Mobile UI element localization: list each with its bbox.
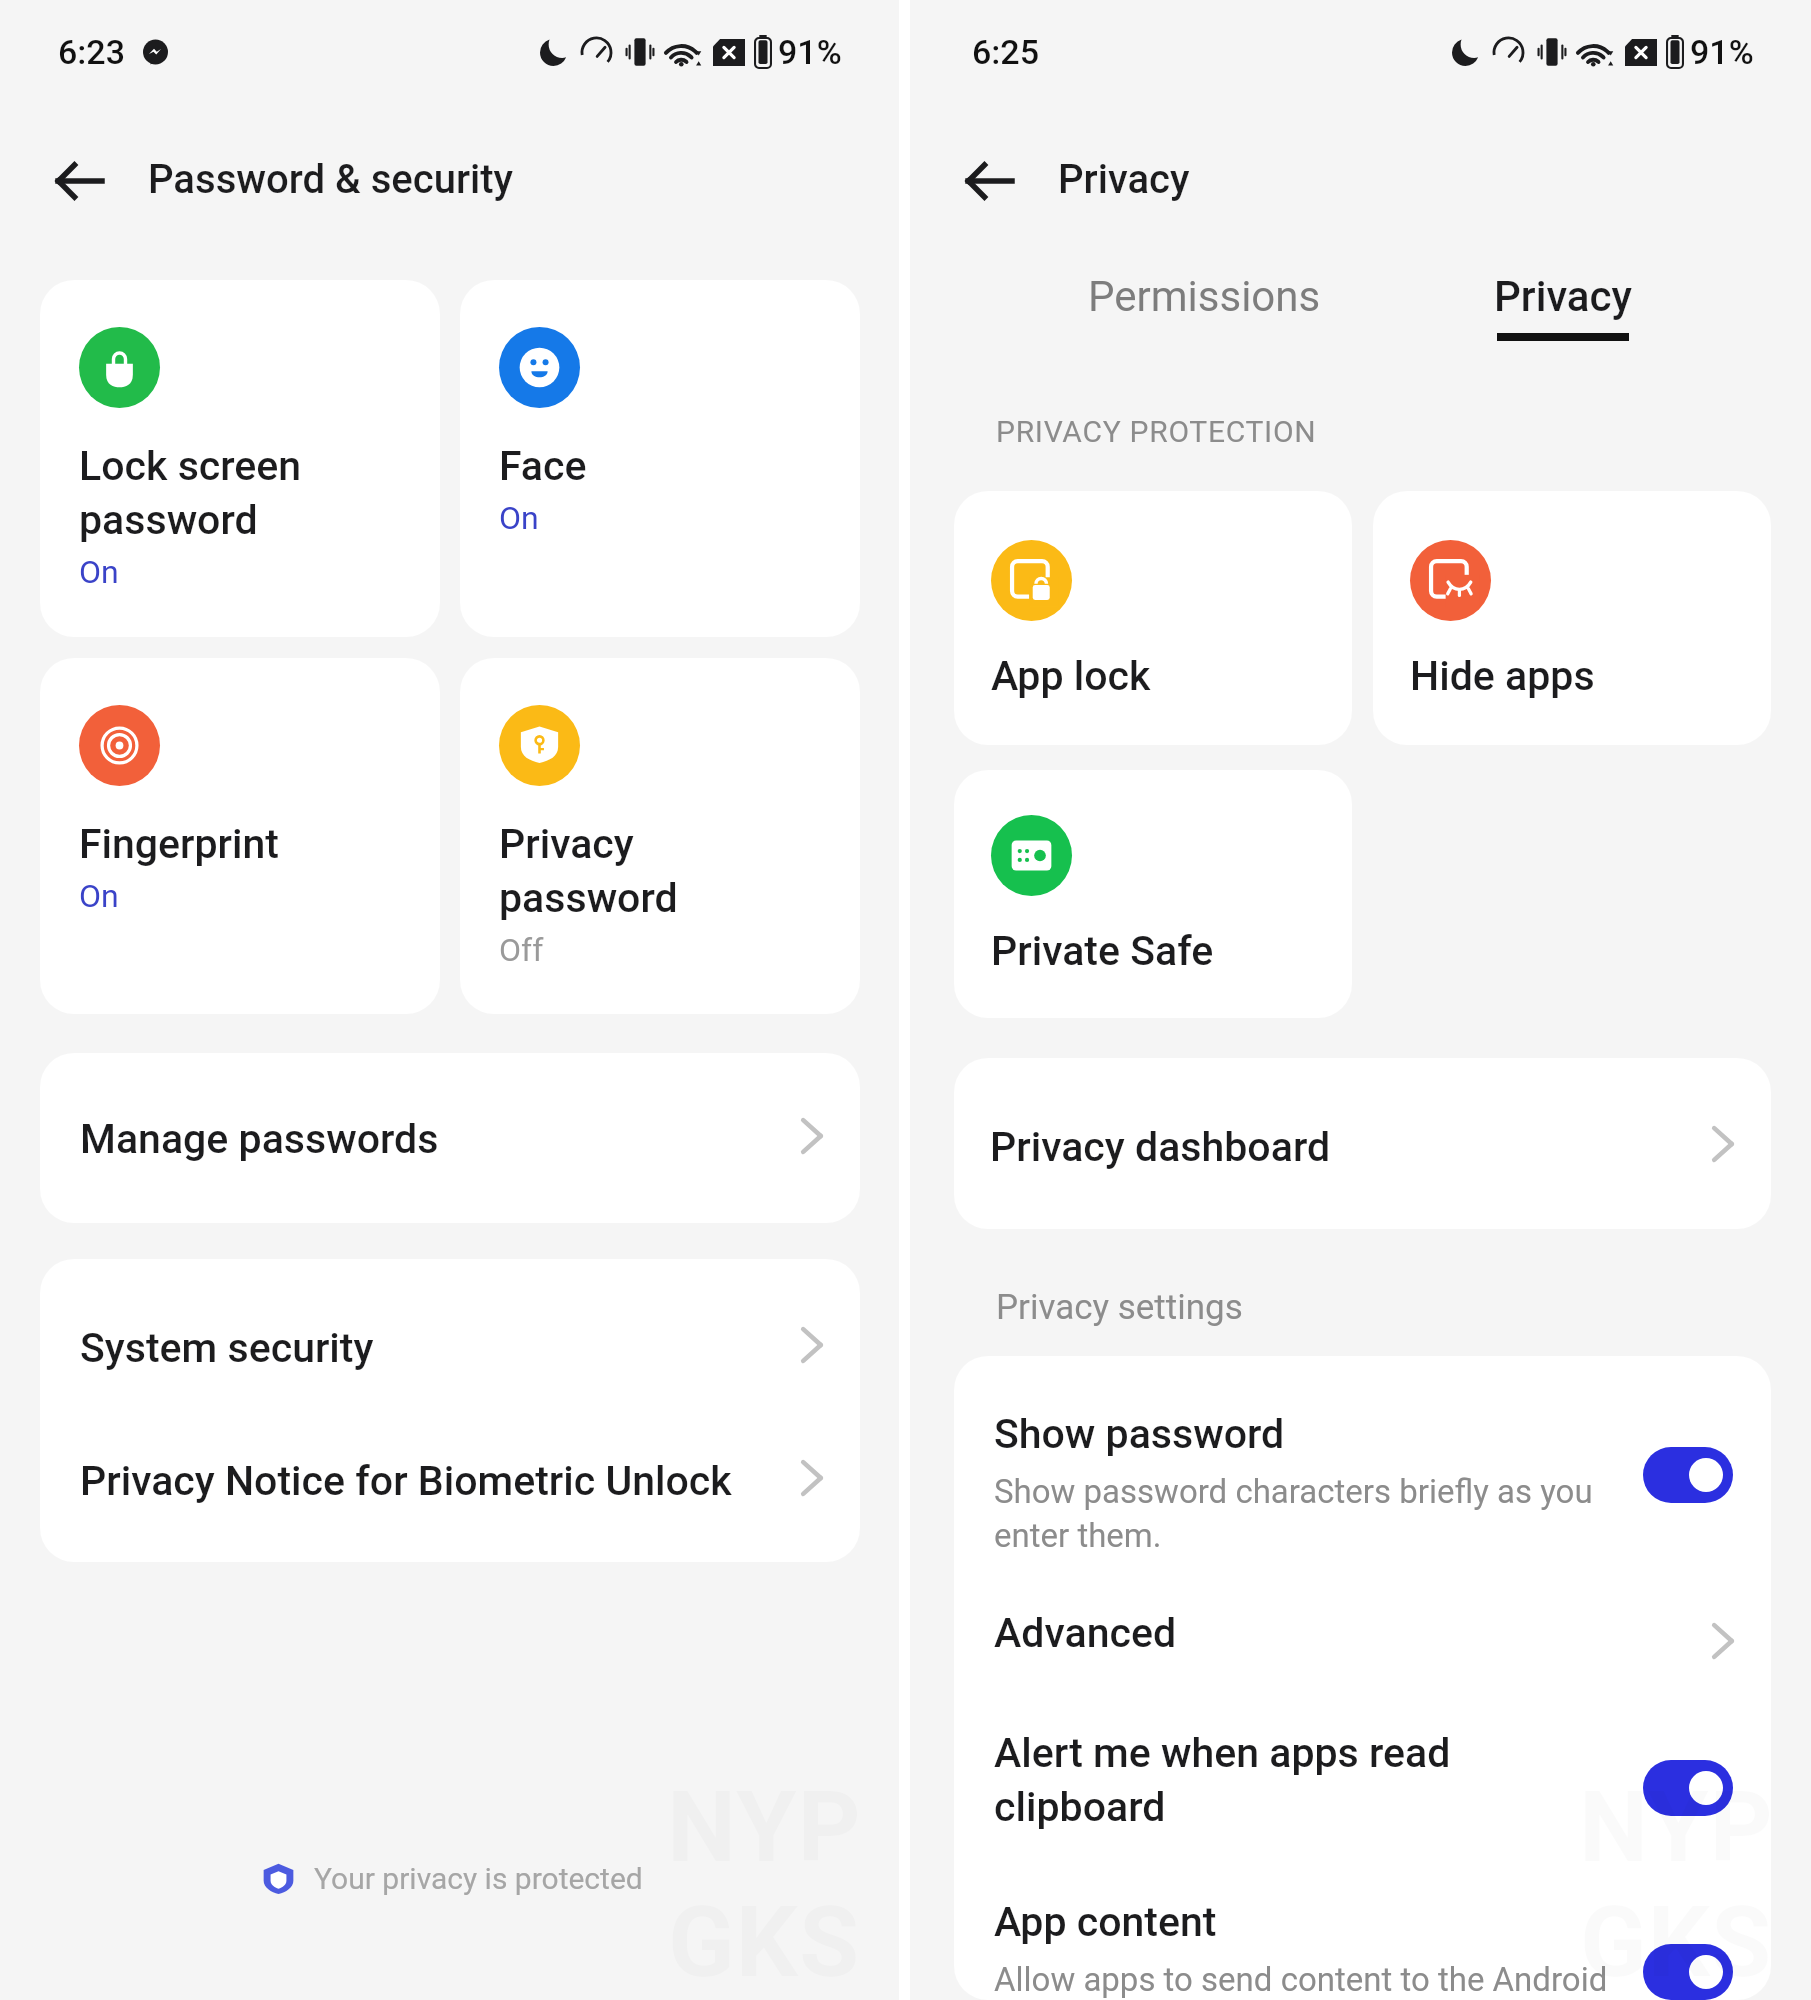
staticText: GKS (1580, 1885, 1773, 2000)
button[interactable]: Face (460, 280, 860, 637)
button[interactable]: Advanced (954, 1554, 1771, 1682)
button[interactable]: System security (40, 1259, 860, 1436)
staticText: Show password (994, 1405, 1285, 1459)
button[interactable]: Alert me when apps read clipboard (954, 1682, 1771, 1848)
staticText: PRIVACY PROTECTION (996, 414, 1317, 449)
staticText: Privacy (1058, 156, 1190, 203)
staticText: Show password characters briefly as you … (994, 1468, 1593, 1554)
staticText: Password & security (148, 156, 514, 203)
button[interactable]: Lock screen password (40, 280, 440, 637)
staticText: Lock screen password (79, 437, 302, 545)
staticText: 6:23 (58, 32, 125, 72)
button[interactable]: App content (954, 1848, 1771, 2000)
staticText: 6:25 (972, 32, 1039, 72)
button[interactable]: Privacy (1497, 272, 1629, 368)
staticText: App lock (991, 652, 1151, 700)
button[interactable]: Back (34, 142, 126, 220)
button[interactable]: Hide apps (1373, 491, 1771, 745)
staticText: Alert me when apps read clipboard (994, 1724, 1451, 1832)
staticText: Fingerprint (79, 815, 279, 869)
button[interactable]: App lock (954, 491, 1352, 745)
staticText: Allow apps to send content to the Androi… (994, 1956, 1608, 2000)
button[interactable]: Fingerprint (40, 658, 440, 1014)
button[interactable]: Permissions (1093, 272, 1315, 368)
button[interactable]: Privacy Notice for Biometric Unlock (40, 1436, 860, 1562)
staticText: Privacy password (499, 815, 678, 923)
staticText: Off (499, 931, 544, 969)
staticText: Your privacy is protected (314, 1861, 643, 1896)
staticText: Hide apps (1410, 652, 1595, 700)
button[interactable]: Private Safe (954, 770, 1352, 1018)
staticText: 91% (778, 32, 842, 72)
staticText: System security (80, 1324, 374, 1372)
staticText: Privacy dashboard (990, 1123, 1331, 1171)
button[interactable]: Privacy dashboard (954, 1058, 1771, 1229)
staticText: App content (994, 1893, 1217, 1947)
staticText: Private Safe (991, 927, 1214, 975)
button[interactable]: Privacy password (460, 658, 860, 1014)
button[interactable]: Show password (954, 1356, 1771, 1554)
staticText: On (79, 553, 119, 591)
button[interactable]: Manage passwords (40, 1053, 860, 1223)
staticText: On (499, 499, 539, 537)
button[interactable]: Back (944, 142, 1036, 220)
staticText: Privacy settings (996, 1287, 1243, 1328)
staticText: Permissions (1088, 272, 1321, 321)
staticText: Privacy (1494, 272, 1633, 321)
staticText: 91% (1690, 32, 1754, 72)
staticText: NYP (1579, 1770, 1774, 1885)
staticText: On (79, 877, 119, 915)
staticText: Privacy Notice for Biometric Unlock (80, 1457, 732, 1505)
staticText: Manage passwords (80, 1115, 439, 1163)
staticText: Face (499, 437, 587, 491)
staticText: Advanced (994, 1609, 1177, 1657)
